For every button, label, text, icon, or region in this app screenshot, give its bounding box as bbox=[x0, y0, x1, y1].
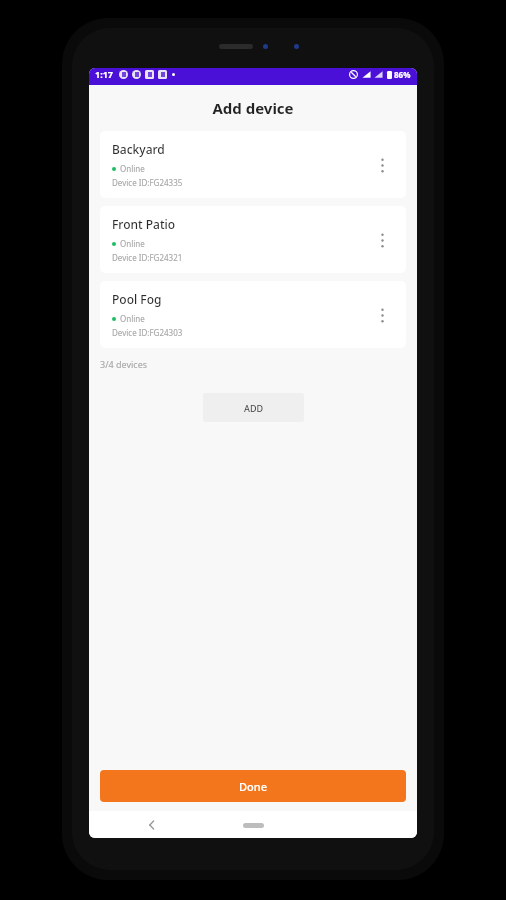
button[interactable]: Back bbox=[141, 814, 163, 836]
staticText: Device ID:FG24335 bbox=[112, 177, 183, 188]
button[interactable]: More options bbox=[370, 228, 394, 252]
staticText: 1:17 bbox=[95, 68, 113, 80]
staticText: Backyard bbox=[112, 141, 165, 157]
staticText: 3/4 devices bbox=[100, 358, 148, 370]
button[interactable]: More options bbox=[370, 303, 394, 327]
staticText: Device ID:FG24303 bbox=[112, 327, 183, 338]
staticText: Done bbox=[239, 779, 267, 794]
staticText: Online bbox=[120, 163, 145, 174]
staticText: Front Patio bbox=[112, 216, 176, 232]
staticText: Online bbox=[120, 313, 145, 324]
staticText: Add device bbox=[212, 98, 294, 118]
button[interactable]: Front Patio bbox=[100, 206, 406, 273]
staticText: Device ID:FG24321 bbox=[112, 252, 183, 263]
staticText: 86% bbox=[394, 69, 411, 80]
button[interactable]: Pool Fog bbox=[100, 281, 406, 348]
button[interactable]: Done bbox=[100, 770, 406, 802]
button[interactable]: More options bbox=[370, 153, 394, 177]
button[interactable]: Home bbox=[237, 820, 269, 830]
staticText: ADD bbox=[244, 402, 264, 414]
button[interactable]: Backyard bbox=[100, 131, 406, 198]
staticText: Online bbox=[120, 238, 145, 249]
button[interactable]: ADD bbox=[203, 393, 304, 422]
staticText: Pool Fog bbox=[112, 291, 162, 307]
